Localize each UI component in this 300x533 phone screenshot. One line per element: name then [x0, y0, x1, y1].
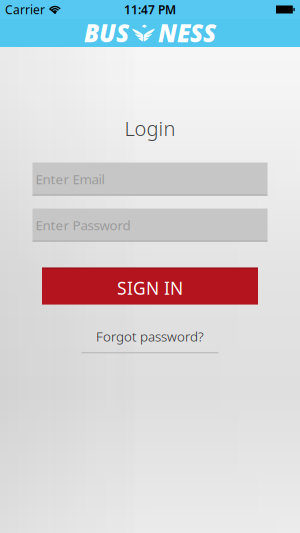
staticText: NESS — [158, 17, 216, 49]
button[interactable]: Enter Password — [32, 209, 267, 242]
staticText: SIGN IN — [117, 277, 183, 300]
staticText: Forgot password? — [96, 328, 204, 345]
staticText: BUS — [84, 17, 129, 49]
staticText: Enter Email — [35, 170, 104, 188]
staticText: Login — [124, 115, 175, 142]
button[interactable]: SIGN IN — [42, 268, 258, 305]
staticText: Enter Password — [35, 216, 130, 234]
staticText: Carrier — [5, 1, 45, 17]
button[interactable]: Forgot password? — [96, 328, 204, 345]
button[interactable]: Enter Email — [32, 163, 267, 196]
staticText: 11:47 PM — [124, 1, 176, 17]
